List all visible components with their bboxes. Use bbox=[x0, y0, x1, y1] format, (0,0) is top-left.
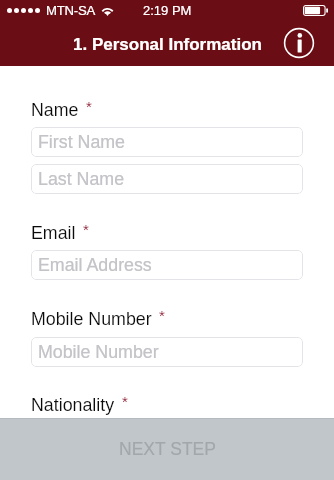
staticText: MTN-SA bbox=[46, 3, 96, 18]
button[interactable]: NEXT STEP bbox=[0, 418, 334, 480]
staticText: NEXT STEP bbox=[119, 439, 216, 459]
button[interactable]: Last Name bbox=[31, 164, 303, 194]
staticText: * bbox=[83, 221, 89, 238]
staticText: Email bbox=[31, 223, 76, 243]
staticText: Name bbox=[31, 100, 79, 120]
staticText: Mobile Number bbox=[38, 342, 159, 362]
button[interactable]: First Name bbox=[31, 127, 303, 157]
staticText: Email Address bbox=[38, 255, 152, 275]
staticText: 1. Personal Information bbox=[73, 35, 262, 54]
button[interactable]: Info bbox=[283, 27, 315, 59]
button[interactable]: Email Address bbox=[31, 250, 303, 280]
staticText: Last Name bbox=[38, 169, 125, 189]
staticText: Mobile Number bbox=[31, 309, 152, 329]
button[interactable]: Mobile Number bbox=[31, 337, 303, 367]
staticText: 2:19 PM bbox=[143, 3, 192, 18]
staticText: * bbox=[122, 393, 128, 410]
staticText: * bbox=[159, 307, 165, 324]
staticText: Nationality bbox=[31, 395, 115, 415]
staticText: * bbox=[86, 98, 92, 115]
staticText: First Name bbox=[38, 132, 126, 152]
